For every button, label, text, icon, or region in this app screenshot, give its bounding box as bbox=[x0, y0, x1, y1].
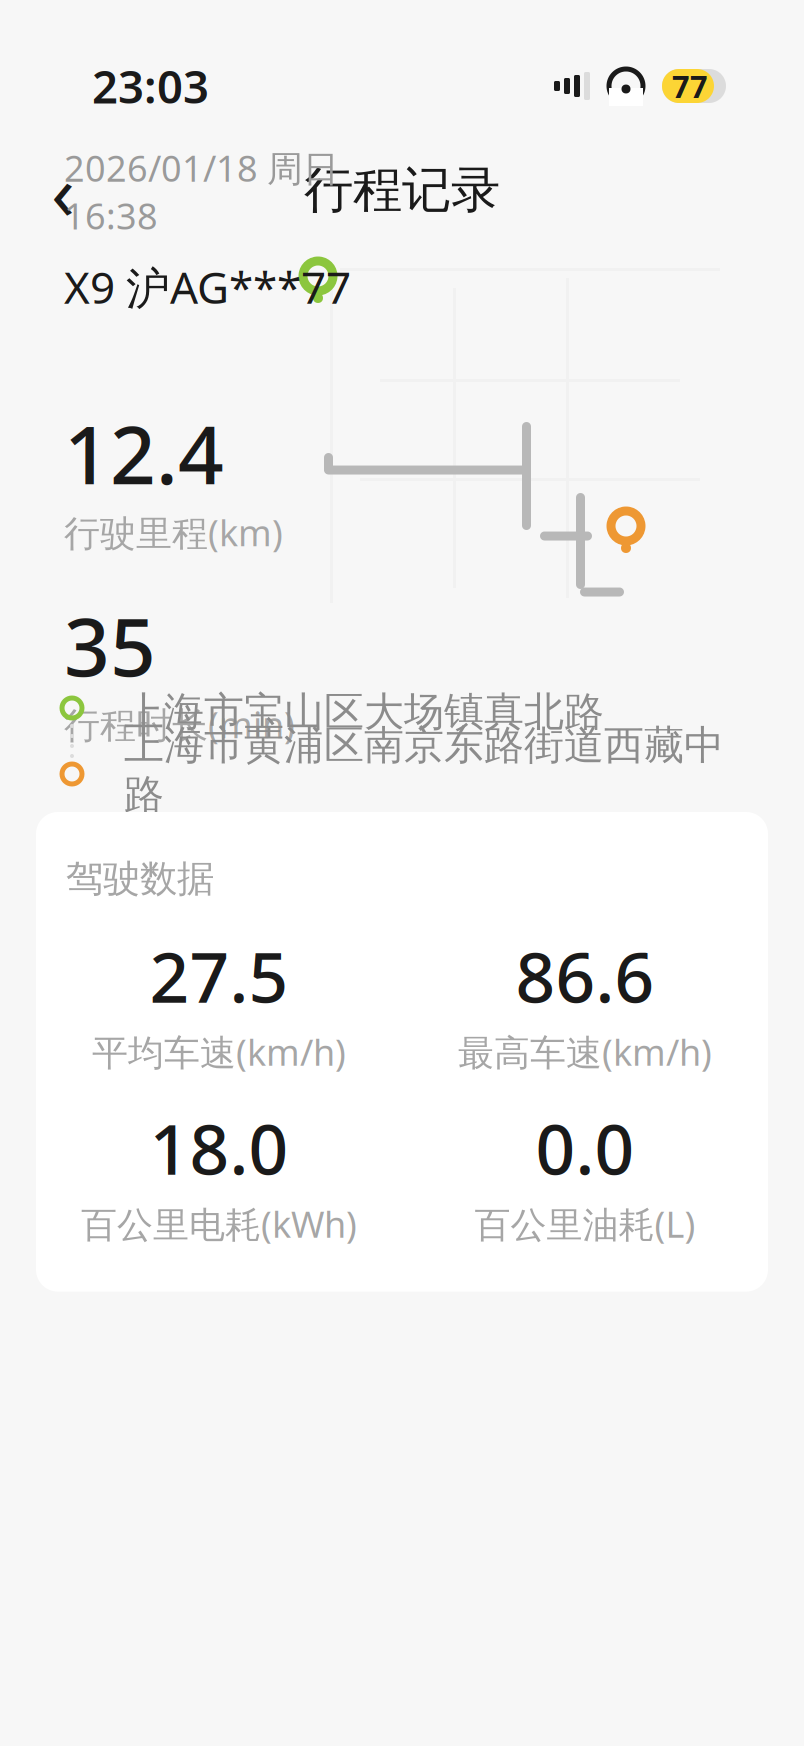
staticText: 23:03 bbox=[92, 56, 209, 116]
staticText: X9 沪AG***77 bbox=[64, 257, 351, 316]
staticText: 27.5 bbox=[149, 930, 288, 1022]
staticText: 77 bbox=[672, 66, 708, 106]
staticText: 行驶里程(km) bbox=[64, 508, 283, 556]
staticText: 12.4 bbox=[64, 400, 224, 506]
staticText: 2026/01/18 周日 16:38 bbox=[64, 144, 339, 239]
staticText: ‹ bbox=[51, 139, 75, 241]
staticText: 百公里电耗(kWh) bbox=[81, 1200, 357, 1248]
staticText: 35 bbox=[64, 592, 156, 698]
staticText: 百公里油耗(L) bbox=[474, 1200, 695, 1248]
staticText: 18.0 bbox=[149, 1102, 288, 1194]
staticText: 86.6 bbox=[515, 930, 654, 1022]
staticText: 最高车速(km/h) bbox=[458, 1028, 712, 1076]
staticText: 驾驶数据 bbox=[66, 856, 214, 902]
staticText: 平均车速(km/h) bbox=[92, 1028, 346, 1076]
staticText: 行程记录 bbox=[304, 160, 500, 220]
staticText: 上海市黄浦区南京东路街道西藏中路 bbox=[124, 721, 724, 819]
button[interactable]: 返回 bbox=[28, 155, 98, 225]
staticText: 行程时长(min) bbox=[64, 700, 295, 748]
staticText: 上海市宝山区大场镇真北路 bbox=[124, 687, 604, 736]
staticText: 0.0 bbox=[535, 1102, 634, 1194]
